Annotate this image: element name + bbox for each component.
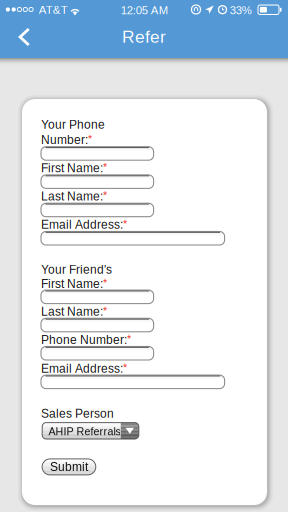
staticText: Refer [122, 27, 166, 46]
button[interactable]: Back [11, 19, 47, 55]
staticText: First Name: [41, 161, 103, 175]
staticText: * [103, 190, 107, 202]
staticText: AHIP Referrals [48, 425, 120, 437]
staticText: Your Friend's [41, 263, 112, 276]
staticText: Email Address: [41, 362, 123, 375]
staticText: * [123, 362, 127, 374]
staticText: AT&T [39, 3, 68, 16]
staticText: * [103, 161, 107, 173]
staticText: 12:05 AM [121, 4, 168, 17]
staticText: Number: [41, 133, 88, 147]
staticText: Last Name: [41, 190, 103, 203]
staticText: Your Phone [41, 118, 105, 131]
button[interactable]: Submit [42, 459, 96, 475]
staticText: * [103, 277, 107, 289]
staticText: Submit [50, 460, 88, 474]
staticText: Phone Number: [41, 333, 127, 347]
staticText: 33% [230, 4, 252, 17]
staticText: * [103, 305, 107, 317]
staticText: Last Name: [41, 305, 103, 318]
staticText: Email Address: [41, 218, 123, 231]
staticText: * [88, 133, 92, 145]
staticText: * [127, 333, 131, 345]
button[interactable]: AHIP Referrals [42, 423, 139, 439]
staticText: First Name: [41, 277, 103, 291]
staticText: * [123, 218, 127, 230]
staticText: Sales Person [41, 407, 114, 420]
